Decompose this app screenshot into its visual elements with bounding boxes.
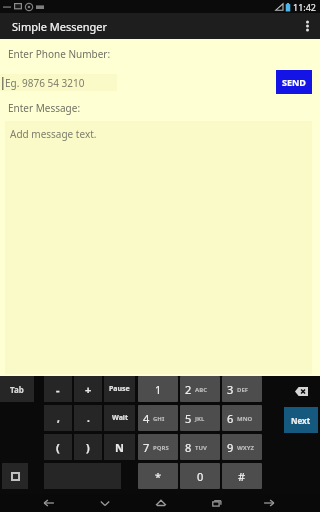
staticText: ABC bbox=[195, 386, 207, 394]
button[interactable]: More options bbox=[294, 13, 320, 39]
staticText: 4 bbox=[143, 411, 150, 426]
button[interactable]: * bbox=[138, 463, 178, 489]
button[interactable]: Forward bbox=[260, 494, 278, 512]
button[interactable]: Switch keyboard bbox=[2, 463, 28, 489]
button[interactable]: 8 bbox=[180, 434, 220, 460]
staticText: N bbox=[115, 440, 124, 455]
button[interactable]: Eg. 9876 54 3210 bbox=[0, 74, 117, 91]
staticText: SEND bbox=[282, 76, 306, 88]
button[interactable]: . bbox=[74, 405, 102, 431]
button[interactable]: ( bbox=[44, 434, 72, 460]
staticText: 5 bbox=[185, 411, 192, 426]
button[interactable]: Tab bbox=[0, 376, 34, 402]
staticText: * bbox=[155, 469, 162, 484]
staticText: 8 bbox=[185, 440, 192, 455]
staticText: MNO bbox=[237, 415, 253, 423]
staticText: 2 bbox=[185, 382, 192, 397]
staticText: Pause bbox=[109, 384, 130, 394]
button[interactable]: Next bbox=[284, 407, 318, 433]
button[interactable]: Add message text. bbox=[5, 121, 312, 374]
staticText: 7 bbox=[143, 440, 150, 455]
button[interactable]: Wait bbox=[104, 405, 135, 431]
button[interactable]: Hide keyboard bbox=[96, 494, 114, 512]
button[interactable]: 2 bbox=[180, 376, 220, 402]
staticText: DEF bbox=[237, 386, 249, 394]
staticText: Enter Message: bbox=[8, 101, 81, 115]
staticText: , bbox=[57, 411, 60, 425]
staticText: PQRS bbox=[153, 444, 169, 452]
button[interactable]: Backspace bbox=[284, 378, 318, 404]
staticText: TUV bbox=[195, 444, 207, 452]
staticText: 11:42 bbox=[293, 1, 317, 13]
staticText: 3 bbox=[227, 382, 234, 397]
button[interactable]: 3 bbox=[222, 376, 262, 402]
staticText: 1 bbox=[155, 382, 162, 397]
button[interactable]: 4 bbox=[138, 405, 178, 431]
button[interactable]: SEND bbox=[276, 70, 312, 94]
staticText: # bbox=[238, 469, 246, 484]
staticText: Simple Messenger bbox=[12, 19, 108, 34]
staticText: ( bbox=[56, 440, 60, 455]
staticText: - bbox=[56, 382, 60, 397]
button[interactable]: 0 bbox=[180, 463, 220, 489]
staticText: . bbox=[87, 411, 90, 425]
button[interactable]: ) bbox=[74, 434, 102, 460]
button[interactable]: 9 bbox=[222, 434, 262, 460]
staticText: 6 bbox=[227, 411, 234, 426]
button[interactable]: 1 bbox=[138, 376, 178, 402]
button[interactable]: N bbox=[104, 434, 135, 460]
button[interactable]: # bbox=[222, 463, 262, 489]
button[interactable]: + bbox=[74, 376, 102, 402]
staticText: ) bbox=[86, 440, 90, 455]
staticText: 9 bbox=[227, 440, 234, 455]
staticText: Add message text. bbox=[10, 127, 97, 141]
staticText: Wait bbox=[112, 413, 128, 423]
button[interactable]: 6 bbox=[222, 405, 262, 431]
button[interactable]: - bbox=[44, 376, 72, 402]
staticText: 0 bbox=[197, 469, 204, 484]
staticText: WXYZ bbox=[237, 444, 255, 452]
staticText: Eg. 9876 54 3210 bbox=[5, 76, 85, 90]
staticText: Enter Phone Number: bbox=[8, 47, 111, 61]
button[interactable]: Recents bbox=[208, 494, 226, 512]
staticText: Next bbox=[291, 415, 311, 426]
button[interactable]: Back bbox=[40, 494, 58, 512]
staticText: JKL bbox=[195, 415, 205, 423]
staticText: GHI bbox=[153, 415, 165, 423]
button[interactable]: 7 bbox=[138, 434, 178, 460]
button[interactable]: Pause bbox=[104, 376, 135, 402]
staticText: Tab bbox=[10, 384, 24, 395]
button[interactable]: , bbox=[44, 405, 72, 431]
staticText: + bbox=[85, 382, 92, 397]
button[interactable]: Home bbox=[152, 494, 170, 512]
button[interactable]: 5 bbox=[180, 405, 220, 431]
